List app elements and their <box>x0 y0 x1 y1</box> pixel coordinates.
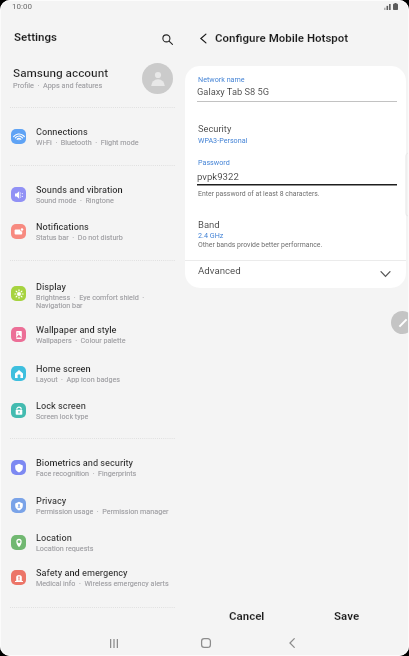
staticText: Layout · App icon badges <box>36 375 120 383</box>
staticText: Band <box>198 219 220 230</box>
button[interactable]: Display <box>0 278 185 308</box>
button[interactable]: Privacy <box>0 490 185 520</box>
staticText: 10:00 <box>12 2 32 11</box>
staticText: Wallpaper and style <box>36 324 117 335</box>
staticText: Home screen <box>36 363 91 374</box>
button[interactable]: Samsung account <box>0 60 185 100</box>
button[interactable]: Save <box>314 605 379 625</box>
button[interactable]: Biometrics and security <box>0 452 185 482</box>
staticText: Sound mode · Ringtone <box>36 196 114 204</box>
staticText: Connections <box>36 126 88 137</box>
button[interactable]: Settings <box>14 30 58 43</box>
button[interactable]: Back <box>272 632 312 654</box>
staticText: Network name <box>198 75 245 83</box>
button[interactable]: Home <box>185 632 225 654</box>
staticText: Permission usage · Permission manager <box>36 507 169 515</box>
button[interactable]: Advanced <box>185 261 406 288</box>
staticText: Enter password of at least 8 characters. <box>198 190 320 198</box>
button[interactable]: Wallpaper and style <box>0 319 185 349</box>
staticText: Screen lock type <box>36 412 89 420</box>
button[interactable]: Cancel <box>214 605 279 625</box>
staticText: Profile · Apps and features <box>13 81 103 90</box>
staticText: Configure Mobile Hotspot <box>215 31 349 44</box>
button[interactable]: Back <box>191 26 215 50</box>
staticText: Medical info · Wireless emergency alerts <box>36 579 169 587</box>
staticText: Brightness · Eye comfort shield · <box>36 293 145 301</box>
staticText: pvpk9322 <box>197 171 239 182</box>
staticText: Other bands provide better performance. <box>198 241 323 249</box>
staticText: Security <box>198 123 232 134</box>
staticText: Face recognition · Fingerprints <box>36 469 137 477</box>
staticText: 2.4 GHz <box>198 231 224 239</box>
staticText: Status bar · Do not disturb <box>36 233 123 241</box>
button[interactable]: Connections <box>0 121 185 151</box>
staticText: Wi-Fi · Bluetooth · Flight mode <box>36 138 139 146</box>
button[interactable]: Lock screen <box>0 395 185 425</box>
staticText: Samsung account <box>13 66 109 80</box>
button[interactable]: Safety and emergency <box>0 562 185 592</box>
button[interactable]: Location <box>0 527 185 557</box>
staticText: Notifications <box>36 221 89 232</box>
staticText: Cancel <box>229 609 265 622</box>
staticText: Navigation bar <box>36 301 83 309</box>
button[interactable]: Search <box>155 27 179 51</box>
button[interactable]: Home screen <box>0 358 185 388</box>
staticText: Privacy <box>36 495 67 506</box>
staticText: Sounds and vibration <box>36 184 123 195</box>
button[interactable]: Edit <box>391 311 409 334</box>
staticText: Advanced <box>198 265 241 276</box>
staticText: Safety and emergency <box>36 567 128 578</box>
staticText: WPA3-Personal <box>198 136 248 144</box>
staticText: Display <box>36 281 67 292</box>
staticText: Location requests <box>36 544 94 552</box>
button[interactable]: Recents <box>95 632 135 654</box>
staticText: Wallpapers · Colour palette <box>36 336 126 344</box>
staticText: Location <box>36 532 72 543</box>
staticText: Biometrics and security <box>36 457 134 468</box>
staticText: Galaxy Tab S8 5G <box>197 86 270 97</box>
staticText: Save <box>334 609 360 622</box>
staticText: Lock screen <box>36 400 86 411</box>
staticText: Password <box>198 158 230 166</box>
button[interactable]: Notifications <box>0 216 185 246</box>
button[interactable]: Sounds and vibration <box>0 179 185 209</box>
